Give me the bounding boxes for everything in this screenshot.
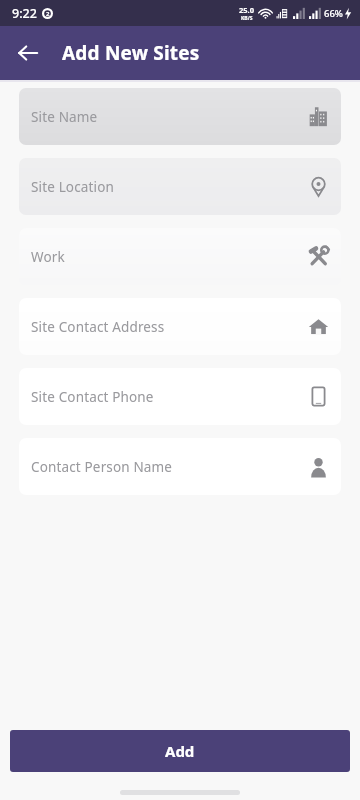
staticText: Add — [165, 741, 195, 761]
staticText: Contact Person Name — [31, 458, 173, 476]
button[interactable]: Site Contact Address — [19, 298, 341, 355]
button[interactable]: Contact Person Name — [19, 438, 341, 495]
button[interactable]: Site Name — [19, 88, 341, 145]
button[interactable]: Add — [10, 730, 350, 772]
staticText: KB/S — [241, 15, 253, 22]
button[interactable]: Site Contact Phone — [19, 368, 341, 425]
staticText: 25.0 — [239, 5, 254, 15]
button[interactable]: Back — [8, 33, 48, 73]
staticText: 2 — [46, 10, 50, 18]
staticText: Site Contact Phone — [31, 388, 154, 406]
staticText: Site Contact Address — [31, 318, 165, 336]
staticText: Site Name — [31, 108, 98, 126]
staticText: Add New Sites — [62, 40, 200, 66]
staticText: 66% — [324, 7, 343, 20]
staticText: 9:22 — [12, 5, 37, 22]
staticText: Site Location — [31, 178, 115, 196]
button[interactable]: Work — [19, 228, 341, 285]
staticText: Work — [31, 248, 65, 266]
button[interactable]: Site Location — [19, 158, 341, 215]
